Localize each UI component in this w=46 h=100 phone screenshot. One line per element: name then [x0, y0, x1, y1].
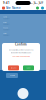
- staticText: Notes: [3, 33, 7, 34]
- staticText: Do you want to save the changes you: [8, 49, 33, 51]
- staticText: Learn more about saving: [12, 56, 30, 57]
- staticText: Save: [26, 67, 30, 69]
- staticText: 9:41: [3, 1, 10, 5]
- button[interactable]: Account: [41, 6, 44, 9]
- button[interactable]: Chat: [17, 88, 28, 99]
- button[interactable]: Call: [36, 6, 39, 9]
- staticText: Name: [3, 16, 7, 18]
- staticText: Discard: [10, 67, 16, 69]
- staticText: Site Name: [6, 6, 21, 10]
- button[interactable]: Discard: [8, 65, 19, 70]
- staticText: value text: [3, 34, 9, 36]
- staticText: value text: [3, 18, 9, 20]
- button[interactable]: Submit: [6, 73, 18, 78]
- staticText: Confirm: [15, 43, 27, 46]
- staticText: Submit: [10, 75, 14, 76]
- staticText: Email: [3, 21, 6, 23]
- button[interactable]: Site Name: [2, 6, 21, 10]
- staticText: value text: [3, 29, 9, 31]
- staticText: â—¦â—¦â–®: [29, 1, 43, 5]
- staticText: value text: [3, 23, 9, 25]
- button[interactable]: Save: [23, 65, 34, 70]
- staticText: made before leaving this page?: [10, 52, 31, 54]
